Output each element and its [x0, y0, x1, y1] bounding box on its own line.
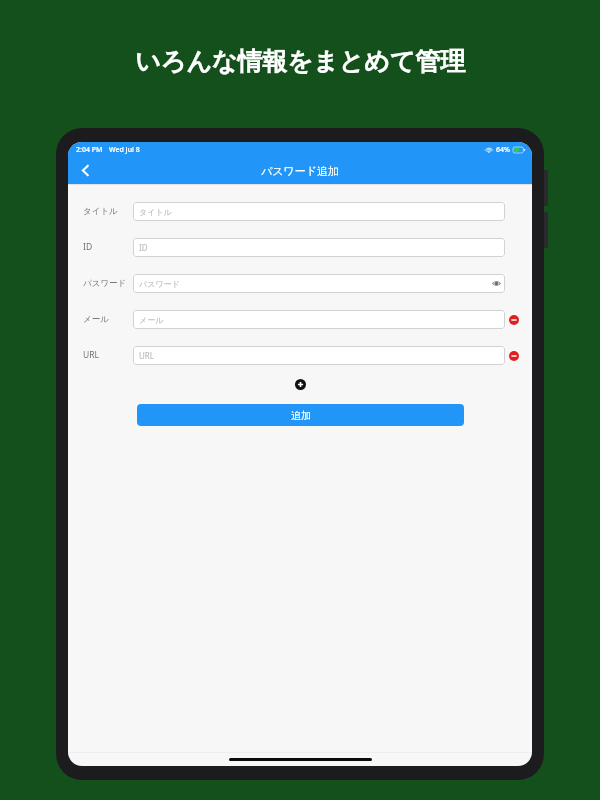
button[interactable]: Remove field — [505, 310, 522, 329]
staticText: パスワード — [139, 279, 180, 289]
staticText: 64% — [496, 145, 510, 155]
button[interactable]: Back — [68, 157, 102, 184]
staticText: パスワード — [83, 278, 133, 289]
staticText: メール — [83, 314, 133, 325]
staticText: いろんな情報をまとめて管理 — [135, 46, 466, 77]
button[interactable]: Add field — [290, 374, 310, 394]
staticText: Wed Jul 8 — [109, 145, 140, 155]
button[interactable]: パスワード — [133, 274, 505, 293]
staticText: タイトル — [139, 207, 172, 217]
button[interactable]: Show password — [488, 275, 505, 292]
staticText: 2:04 PM — [76, 145, 103, 155]
staticText: ID — [83, 241, 133, 253]
staticText: メール — [139, 315, 164, 325]
staticText: ID — [139, 242, 148, 253]
staticText: URL — [83, 349, 133, 361]
button[interactable]: タイトル — [133, 202, 505, 221]
staticText: 追加 — [291, 409, 311, 422]
button[interactable]: メール — [133, 310, 505, 329]
button[interactable]: 追加 — [137, 404, 464, 426]
staticText: URL — [139, 350, 155, 361]
staticText: パスワード追加 — [261, 164, 340, 178]
button[interactable]: ID — [133, 238, 505, 257]
button[interactable]: URL — [133, 346, 505, 365]
button[interactable]: Remove field — [505, 346, 522, 365]
staticText: タイトル — [83, 206, 133, 217]
